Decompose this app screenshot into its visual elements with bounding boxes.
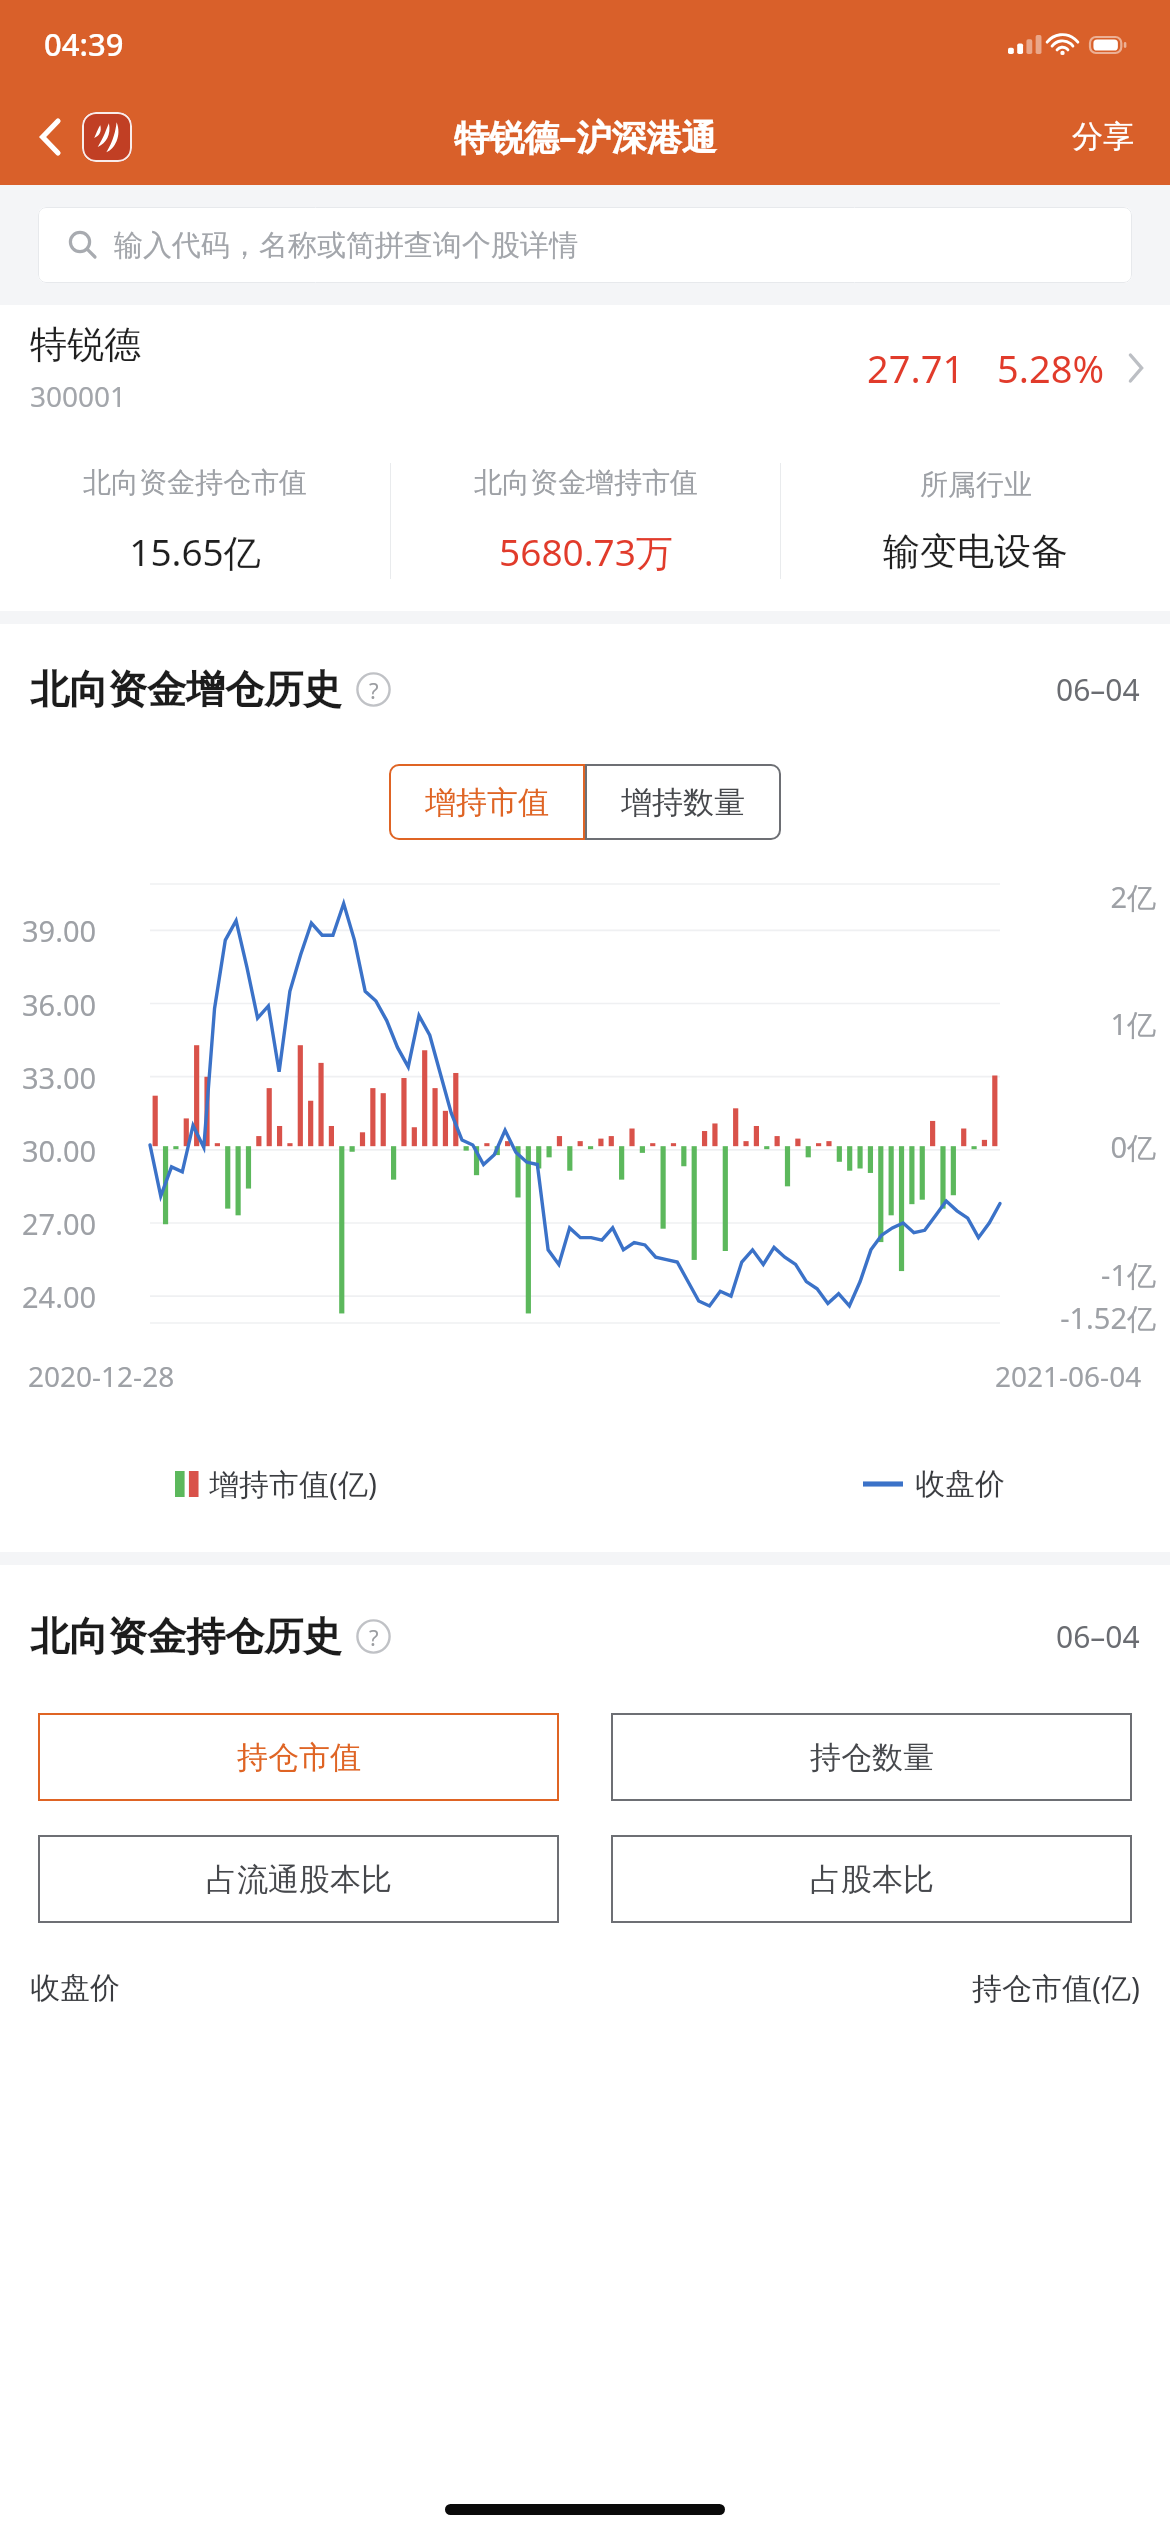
staticText: 占股本比 xyxy=(810,1860,934,1899)
staticText: -1亿 xyxy=(0,1255,1156,1295)
staticText: 24.00 xyxy=(22,1277,97,1316)
staticText: 北向资金增仓历史 xyxy=(30,665,342,714)
staticText: 持仓数量 xyxy=(810,1738,934,1777)
staticText: 收盘价 xyxy=(30,1969,120,2007)
staticText: 2020-12-28 xyxy=(28,1357,175,1395)
staticText: 收盘价 xyxy=(915,1465,1005,1503)
button[interactable]: 北向资金持仓市值 xyxy=(0,431,390,611)
staticText: 特锐德 xyxy=(30,321,141,368)
staticText: 所属行业 xyxy=(920,467,1032,502)
button[interactable]: 分享 xyxy=(1036,88,1170,185)
staticText: 5680.73万 xyxy=(499,526,673,577)
staticText: 300001 xyxy=(30,377,127,415)
staticText: 特锐德–沪深港通 xyxy=(454,113,717,161)
staticText: 39.00 xyxy=(22,911,97,950)
staticText: 2021-06-04 xyxy=(995,1357,1142,1395)
staticText: 增持数量 xyxy=(621,783,745,822)
staticText: 北向资金增持市值 xyxy=(474,465,698,500)
button[interactable]: 输入代码，名称或简拼查询个股详情 xyxy=(38,207,1132,283)
staticText: 增持市值 xyxy=(425,783,549,822)
staticText: ? xyxy=(369,675,379,705)
staticText: 输入代码，名称或简拼查询个股详情 xyxy=(114,227,578,264)
button[interactable]: Help xyxy=(356,1619,391,1654)
staticText: 持仓市值 xyxy=(237,1738,361,1777)
staticText: 06–04 xyxy=(1056,669,1140,710)
button[interactable]: 增持市值 xyxy=(389,764,585,840)
staticText: 增持市值(亿) xyxy=(209,1463,377,1504)
staticText: 06–04 xyxy=(1056,1616,1140,1657)
staticText: -1.52亿 xyxy=(0,1298,1156,1338)
button[interactable]: Help xyxy=(356,672,391,707)
staticText: 2亿 xyxy=(0,877,1156,917)
button[interactable]: 占股本比 xyxy=(611,1835,1132,1923)
button[interactable]: 持仓市值 xyxy=(38,1713,559,1801)
staticText: 33.00 xyxy=(22,1058,97,1097)
button[interactable]: App logo xyxy=(82,112,132,162)
button[interactable]: 占流通股本比 xyxy=(38,1835,559,1923)
staticText: 15.65亿 xyxy=(129,526,261,577)
button[interactable]: 持仓数量 xyxy=(611,1713,1132,1801)
button[interactable]: 所属行业 xyxy=(781,431,1170,611)
staticText: 1亿 xyxy=(0,1004,1156,1044)
staticText: 北向资金持仓历史 xyxy=(30,1612,342,1661)
staticText: 36.00 xyxy=(22,985,97,1024)
button[interactable]: 增持数量 xyxy=(585,764,781,840)
staticText: 04:39 xyxy=(44,23,124,65)
button[interactable]: 特锐德 xyxy=(0,305,1170,431)
staticText: 0亿 xyxy=(0,1127,1156,1167)
staticText: 30.00 xyxy=(22,1131,97,1170)
button[interactable]: Back xyxy=(22,108,80,166)
staticText: 北向资金持仓市值 xyxy=(83,465,307,500)
staticText: 输变电设备 xyxy=(883,528,1068,575)
staticText: 占流通股本比 xyxy=(206,1860,392,1899)
staticText: 持仓市值(亿) xyxy=(972,1967,1140,2008)
staticText: 27.71 xyxy=(867,342,965,394)
staticText: 分享 xyxy=(1072,117,1134,156)
staticText: 27.00 xyxy=(22,1204,97,1243)
button[interactable]: 北向资金增持市值 xyxy=(391,431,780,611)
staticText: 5.28% xyxy=(997,342,1104,394)
staticText: ? xyxy=(369,1622,379,1652)
